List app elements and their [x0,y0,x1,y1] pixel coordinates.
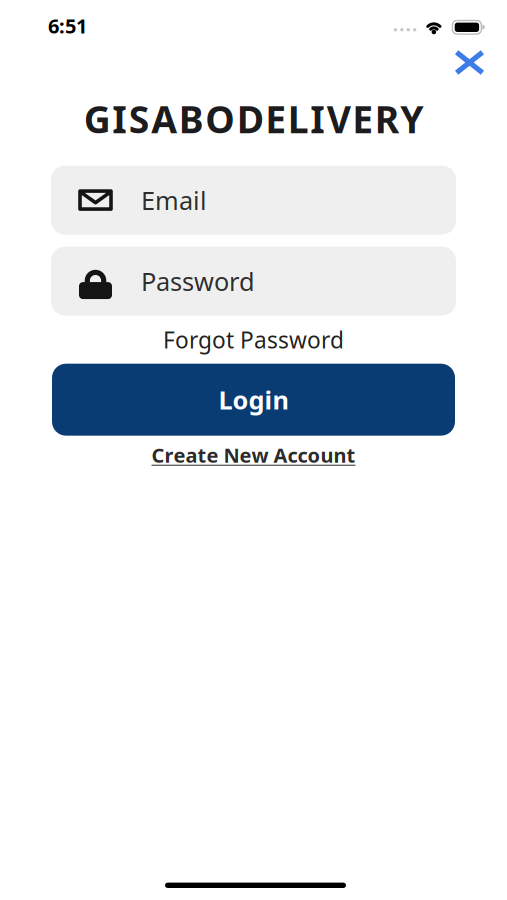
staticText: Login [218,383,288,416]
button[interactable]: Forgot Password [163,325,344,355]
button[interactable]: Close [455,50,484,75]
staticText: GISABODELIVERY [84,94,423,144]
button[interactable]: Login [52,364,455,436]
staticText: Forgot Password [163,325,344,355]
button[interactable]: Email [51,166,456,235]
staticText: Email [141,183,207,217]
staticText: 6:51 [48,12,87,39]
button[interactable]: Create New Account [151,442,355,468]
staticText: Create New Account [151,442,355,468]
button[interactable]: Password [51,247,456,316]
staticText: Password [141,264,255,298]
